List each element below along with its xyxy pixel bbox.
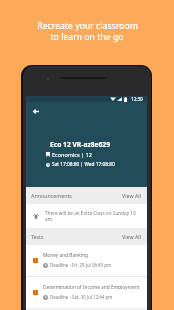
staticText: 12:30 (131, 96, 143, 102)
staticText: Deadline - Sat, 30 Jul 12:44 pm (50, 294, 113, 300)
staticText: Eco 12 VR-az8e629 (50, 140, 110, 149)
staticText: Announcements (31, 192, 72, 199)
button[interactable]: Determination of Income and Employment (26, 277, 147, 308)
button[interactable]: View All (122, 192, 142, 199)
button[interactable]: Back (29, 104, 43, 118)
staticText: Recreate your classroom (37, 20, 138, 32)
button[interactable]: View All (122, 233, 142, 240)
staticText: to learn on the go (50, 31, 124, 43)
staticText: Determination of Income and Employment (43, 284, 140, 291)
staticText: Tests (31, 233, 44, 240)
staticText: Economics | 12 (52, 151, 92, 158)
staticText: Sat 17:08:80 | Wed 17:08:80 (52, 161, 115, 168)
button[interactable]: There will be an Extra Class on Sunday 1… (26, 204, 147, 228)
staticText: Money and Banking (43, 252, 88, 259)
staticText: There will be an Extra Class on Sunday 1… (45, 210, 142, 222)
staticText: Deadline - Fri, 29 Jul 06:45 pm (50, 262, 112, 268)
button[interactable]: Money and Banking (26, 245, 147, 276)
